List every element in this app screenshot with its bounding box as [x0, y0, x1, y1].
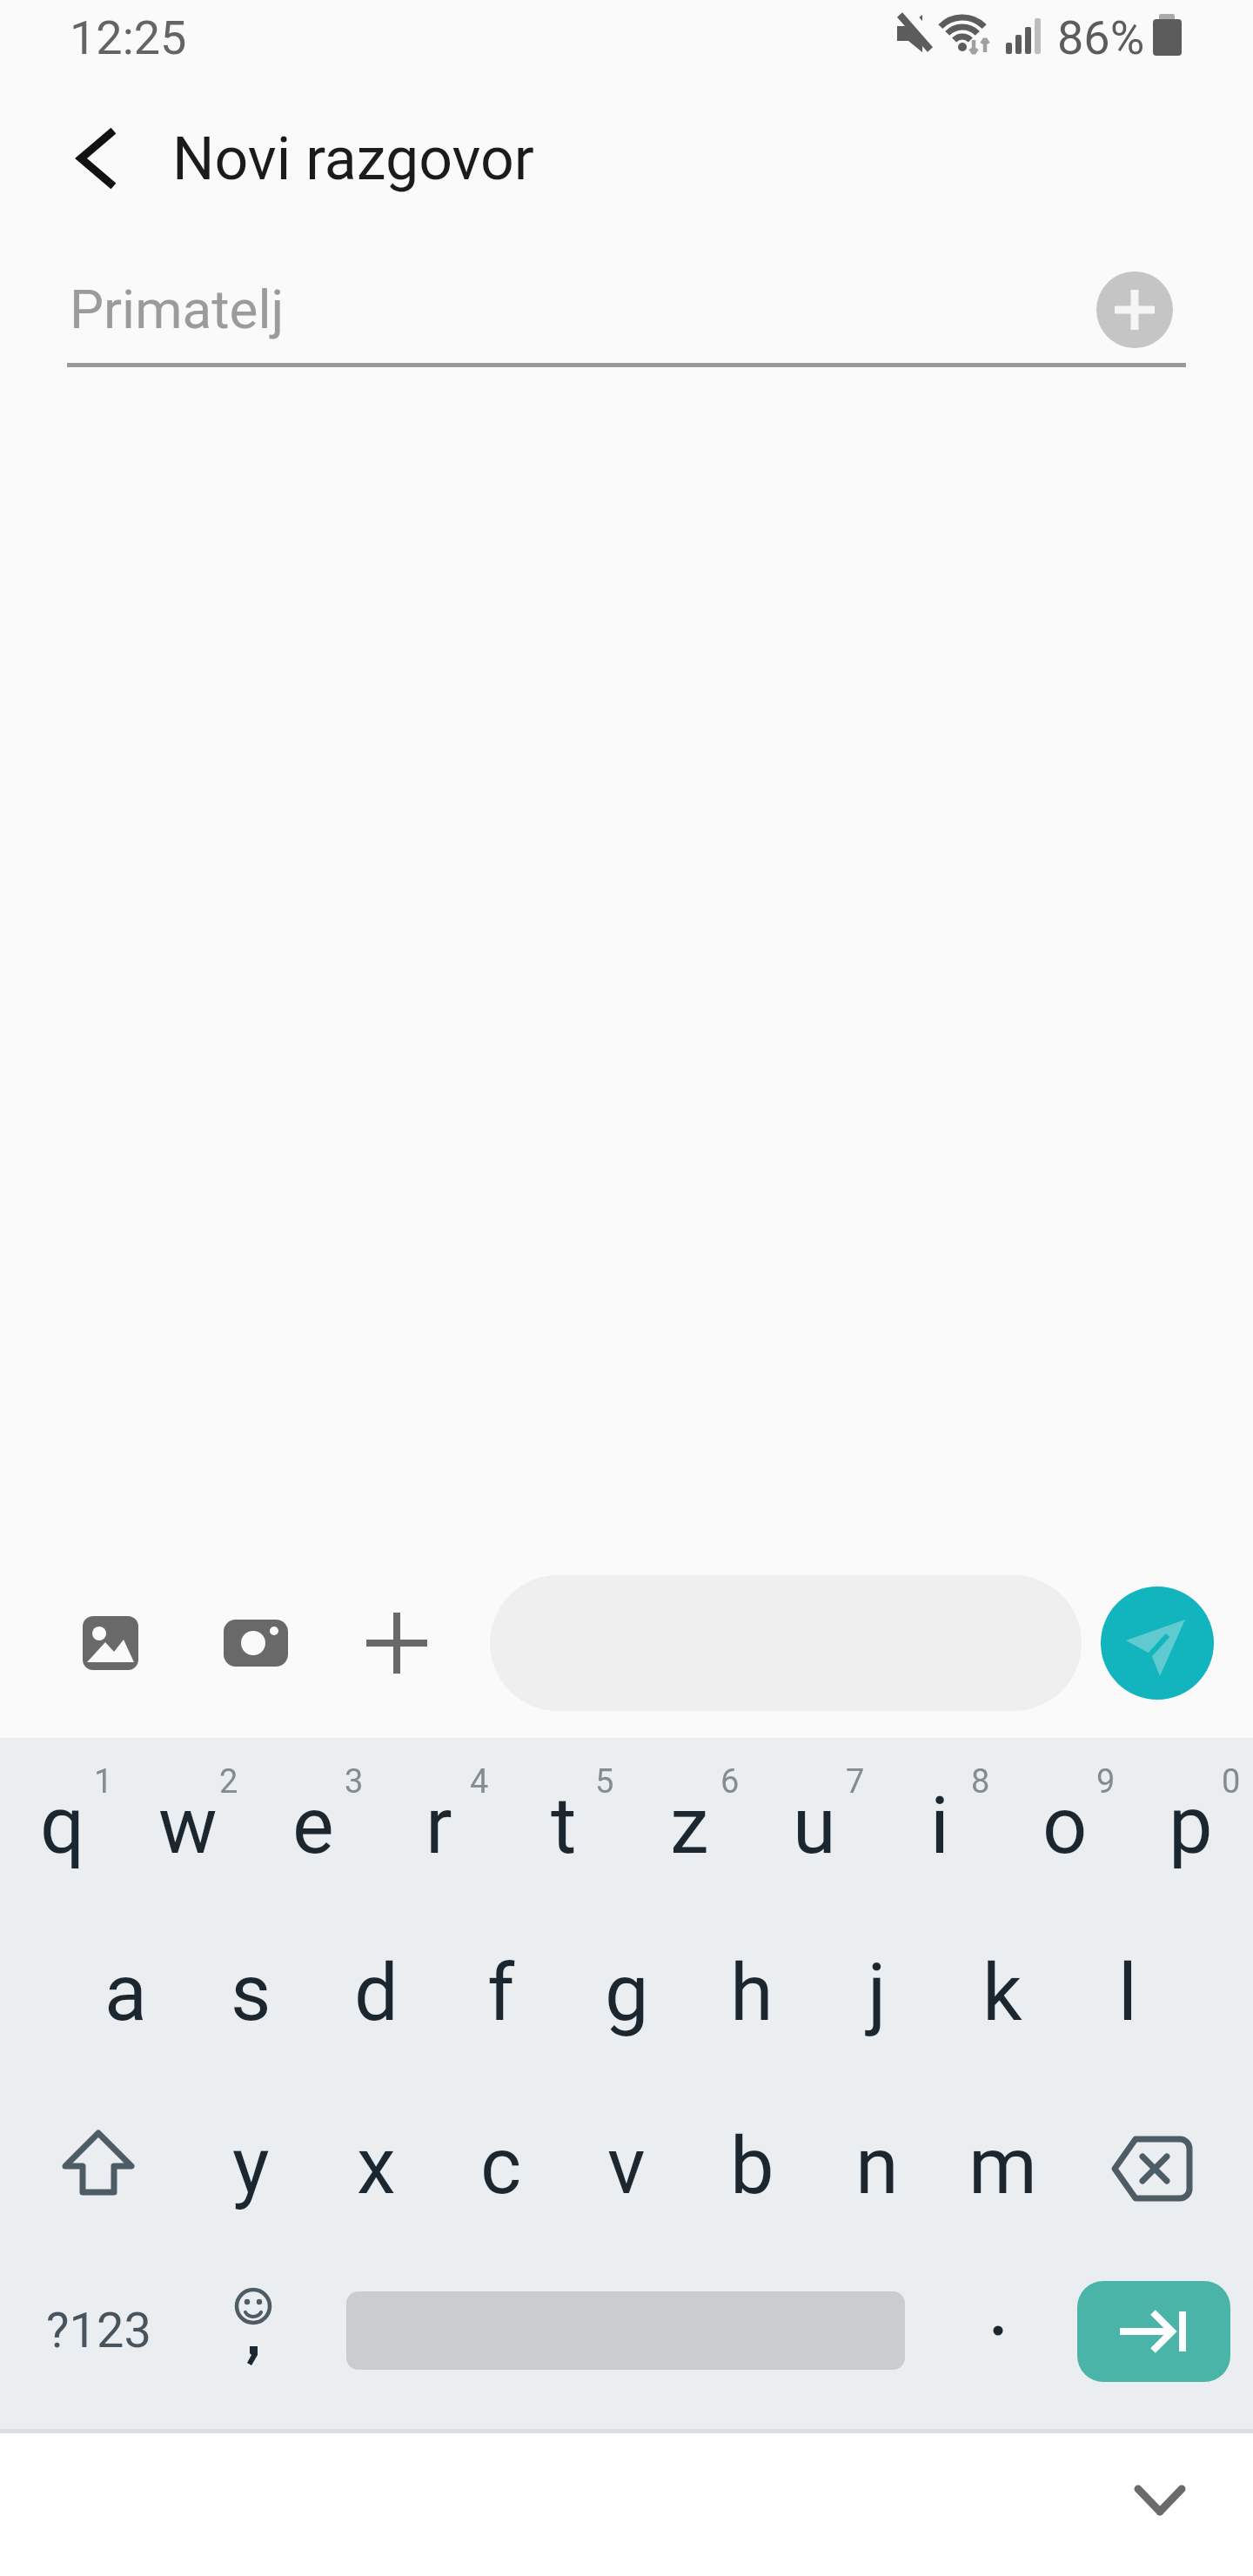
staticText: e: [292, 1781, 334, 1872]
staticText: x: [357, 2121, 396, 2212]
button[interactable]: j: [814, 1908, 940, 2078]
staticText: 9: [1096, 1762, 1116, 1801]
button[interactable]: x: [313, 2081, 439, 2251]
button[interactable]: f: [439, 1908, 564, 2078]
staticText: h: [730, 1948, 774, 2039]
button[interactable]: c: [439, 2081, 564, 2251]
button[interactable]: [65, 1600, 156, 1687]
staticText: n: [855, 2121, 899, 2212]
button[interactable]: v: [564, 2081, 689, 2251]
button[interactable]: h: [689, 1908, 814, 2078]
button[interactable]: [211, 1600, 301, 1687]
button[interactable]: m: [940, 2081, 1065, 2251]
staticText: 86%: [1057, 10, 1145, 63]
staticText: Primatelj: [70, 278, 285, 341]
staticText: Novi razgovor: [172, 124, 534, 194]
staticText: a: [104, 1948, 147, 2039]
button[interactable]: [1082, 2099, 1222, 2238]
button[interactable]: o: [1002, 1741, 1128, 1911]
button[interactable]: [352, 1600, 442, 1687]
button[interactable]: [955, 2278, 1042, 2383]
staticText: q: [40, 1781, 85, 1872]
button[interactable]: l: [1065, 1908, 1190, 2078]
button[interactable]: [1101, 1587, 1214, 1700]
staticText: u: [793, 1781, 836, 1872]
staticText: ?123: [46, 2302, 151, 2359]
button[interactable]: p: [1128, 1741, 1253, 1911]
button[interactable]: [1077, 2281, 1230, 2382]
staticText: f: [487, 1948, 515, 2039]
button[interactable]: u: [752, 1741, 877, 1911]
staticText: d: [354, 1948, 399, 2039]
staticText: 8: [971, 1762, 990, 1801]
button[interactable]: q: [0, 1741, 125, 1911]
button[interactable]: [1090, 2440, 1230, 2562]
button[interactable]: y: [188, 2081, 313, 2251]
button[interactable]: b: [689, 2081, 814, 2251]
button[interactable]: a: [63, 1908, 188, 2078]
staticText: s: [231, 1948, 271, 2039]
staticText: 0: [1222, 1762, 1241, 1801]
button[interactable]: [29, 2096, 168, 2235]
button[interactable]: z: [626, 1741, 752, 1911]
staticText: 5: [595, 1762, 614, 1801]
staticText: j: [868, 1948, 887, 2039]
button[interactable]: w: [125, 1741, 251, 1911]
button[interactable]: e: [251, 1741, 376, 1911]
staticText: p: [1169, 1781, 1213, 1872]
staticText: 7: [846, 1762, 865, 1801]
staticText: v: [607, 2121, 646, 2212]
button[interactable]: [44, 106, 148, 211]
staticText: l: [1118, 1948, 1137, 2039]
button[interactable]: d: [313, 1908, 439, 2078]
staticText: r: [425, 1781, 452, 1872]
button[interactable]: g: [564, 1908, 689, 2078]
button[interactable]: k: [940, 1908, 1065, 2078]
staticText: t: [551, 1781, 577, 1872]
button[interactable]: s: [188, 1908, 313, 2078]
staticText: o: [1042, 1781, 1088, 1872]
staticText: 4: [470, 1762, 489, 1801]
staticText: z: [670, 1781, 709, 1872]
staticText: y: [232, 2121, 270, 2212]
button[interactable]: ?123: [11, 2278, 185, 2383]
staticText: k: [982, 1948, 1022, 2039]
staticText: 6: [720, 1762, 740, 1801]
button[interactable]: [192, 2261, 314, 2400]
staticText: b: [730, 2121, 774, 2212]
staticText: 1: [94, 1762, 113, 1801]
button[interactable]: [1096, 272, 1173, 348]
staticText: 2: [219, 1762, 238, 1801]
button[interactable]: t: [501, 1741, 626, 1911]
staticText: w: [158, 1781, 218, 1872]
staticText: 12:25: [70, 10, 187, 63]
button[interactable]: i: [877, 1741, 1002, 1911]
button[interactable]: r: [376, 1741, 501, 1911]
button[interactable]: [346, 2291, 905, 2370]
staticText: m: [968, 2121, 1037, 2212]
staticText: i: [930, 1781, 949, 1872]
staticText: c: [480, 2121, 522, 2212]
button[interactable]: n: [814, 2081, 940, 2251]
staticText: g: [605, 1948, 649, 2039]
staticText: 3: [345, 1762, 364, 1801]
